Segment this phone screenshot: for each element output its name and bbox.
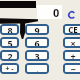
staticText: 2	[7, 50, 13, 61]
button[interactable]: 8	[0, 24, 19, 35]
staticText: 3	[34, 50, 40, 61]
staticText: + -	[5, 64, 14, 74]
staticText: 0	[53, 5, 60, 19]
button[interactable]: Backspace	[67, 10, 77, 20]
button[interactable]: CE	[63, 24, 80, 35]
button[interactable]: 2	[0, 50, 19, 61]
staticText: CE	[68, 24, 78, 35]
staticText: 9	[34, 24, 40, 35]
button[interactable]: −	[63, 63, 80, 74]
staticText: 8	[7, 24, 13, 35]
staticText: .	[36, 63, 39, 74]
button[interactable]: .	[25, 63, 49, 74]
button[interactable]: 5	[0, 37, 19, 48]
button[interactable]: 9	[25, 24, 49, 35]
button[interactable]: 3	[25, 50, 49, 61]
button[interactable]: 0	[37, 5, 62, 19]
staticText: +	[70, 50, 76, 61]
staticText: 5	[7, 37, 13, 48]
button[interactable]: 6	[25, 37, 49, 48]
staticText: −	[70, 63, 76, 74]
button[interactable]: + -	[0, 63, 19, 74]
staticText: ×	[70, 37, 76, 48]
button[interactable]: ×	[63, 37, 80, 48]
staticText: 6	[34, 37, 40, 48]
button[interactable]: +	[63, 50, 80, 61]
